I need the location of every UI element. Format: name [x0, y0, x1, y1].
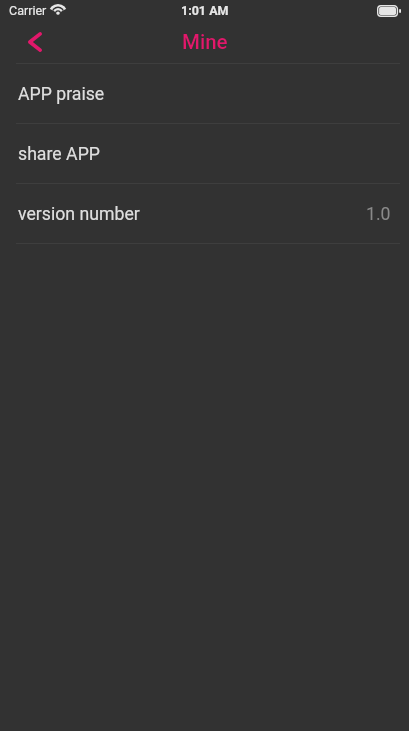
staticText: share APP	[18, 144, 100, 165]
button[interactable]: share APP	[0, 124, 409, 183]
staticText: version number	[18, 204, 140, 225]
staticText: Carrier	[9, 3, 47, 18]
staticText: 1:01 AM	[181, 3, 229, 18]
staticText: 1.0	[366, 204, 391, 225]
other: Battery	[377, 5, 401, 17]
staticText: Mine	[182, 30, 228, 54]
button[interactable]: version number	[0, 184, 409, 243]
staticText: APP praise	[18, 84, 105, 105]
button[interactable]: APP praise	[0, 64, 409, 123]
button[interactable]: Back	[13, 21, 57, 63]
